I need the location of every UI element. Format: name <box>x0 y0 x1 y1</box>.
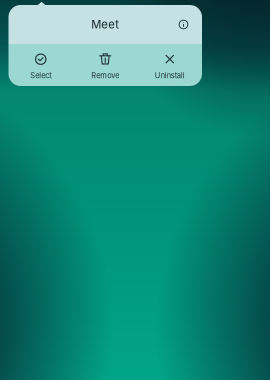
staticText: Select <box>30 71 51 80</box>
button[interactable]: Uninstall <box>137 44 202 86</box>
staticText: Remove <box>91 71 119 80</box>
button[interactable]: Select <box>8 44 73 86</box>
staticText: Meet <box>91 18 119 31</box>
button[interactable]: App info <box>170 11 196 37</box>
button[interactable]: Remove <box>73 44 137 86</box>
staticText: Uninstall <box>155 71 185 80</box>
